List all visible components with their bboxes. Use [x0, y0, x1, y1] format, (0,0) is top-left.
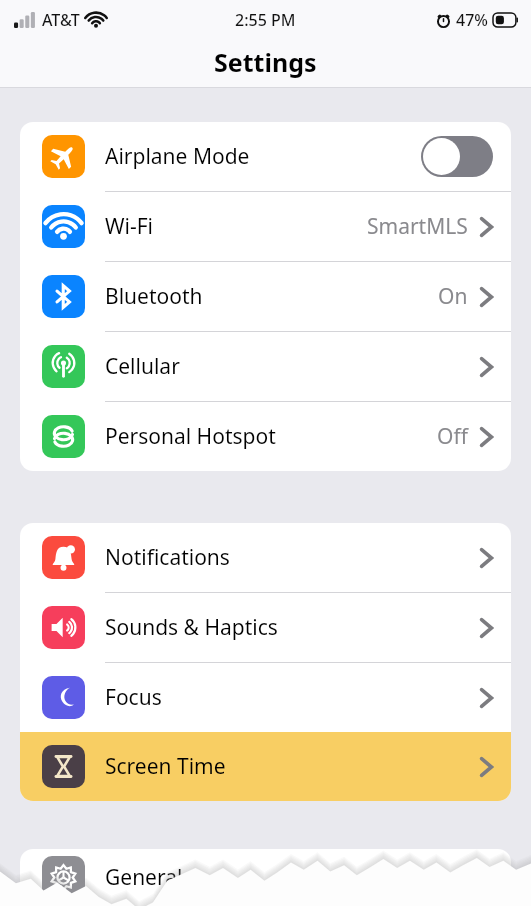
button[interactable]: General: [20, 849, 511, 906]
staticText: Cellular: [105, 352, 180, 381]
staticText: Settings: [214, 45, 317, 79]
button[interactable]: Sounds & Haptics: [20, 593, 511, 662]
staticText: AT&T: [42, 9, 80, 31]
staticText: Personal Hotspot: [105, 422, 276, 451]
staticText: Sounds & Haptics: [105, 613, 278, 642]
staticText: Screen Time: [105, 752, 226, 781]
staticText: 47%: [456, 9, 488, 31]
staticText: Airplane Mode: [105, 142, 250, 171]
staticText: Focus: [105, 683, 162, 712]
staticText: Notifications: [105, 543, 230, 572]
button[interactable]: Bluetooth: [20, 262, 511, 331]
staticText: 2:55 PM: [235, 9, 296, 31]
button[interactable]: Personal Hotspot: [20, 402, 511, 471]
staticText: Wi-Fi: [105, 212, 154, 241]
button[interactable]: Cellular: [20, 332, 511, 401]
button[interactable]: Airplane Mode toggle, off: [421, 136, 493, 177]
button[interactable]: Screen Time: [20, 732, 511, 801]
button[interactable]: Notifications: [20, 523, 511, 592]
staticText: General: [105, 863, 183, 892]
button[interactable]: Focus: [20, 663, 511, 732]
staticText: Off: [437, 422, 468, 451]
staticText: SmartMLS: [367, 212, 468, 241]
button[interactable]: Airplane Mode: [20, 122, 511, 191]
staticText: Bluetooth: [105, 282, 203, 311]
button[interactable]: Wi-Fi: [20, 192, 511, 261]
staticText: On: [438, 282, 468, 311]
